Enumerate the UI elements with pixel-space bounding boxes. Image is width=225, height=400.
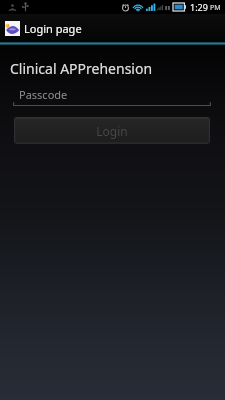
staticText: Login page: [24, 21, 82, 36]
staticText: Clinical APPrehension: [10, 59, 153, 78]
button[interactable]: Passcode: [13, 86, 211, 107]
staticText: PM: [210, 3, 221, 13]
button[interactable]: Login: [14, 117, 210, 144]
button[interactable]: Login page: [0, 14, 225, 42]
staticText: Passcode: [19, 87, 68, 102]
staticText: 1:29: [190, 1, 208, 13]
staticText: Login: [96, 123, 128, 139]
